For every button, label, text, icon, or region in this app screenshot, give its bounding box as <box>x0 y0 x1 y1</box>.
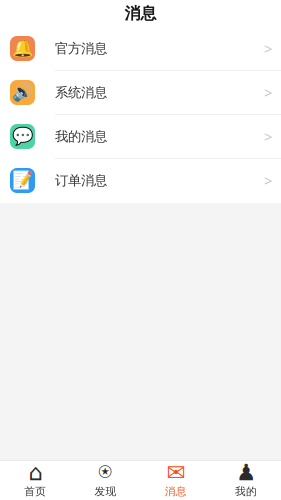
staticText: 我的消息 <box>55 128 107 145</box>
staticText: 系统消息 <box>55 84 107 101</box>
staticText: ♟ <box>236 460 256 485</box>
staticText: ⌂ <box>28 460 42 485</box>
staticText: 消息 <box>124 4 156 23</box>
staticText: ✉ <box>166 460 185 485</box>
staticText: 我的 <box>235 485 257 498</box>
staticText: 消息 <box>165 485 187 498</box>
button[interactable]: ⍟ <box>70 457 140 500</box>
button[interactable]: ♟ <box>211 457 281 500</box>
staticText: > <box>264 39 272 58</box>
staticText: > <box>264 83 272 102</box>
staticText: 发现 <box>94 485 116 498</box>
button[interactable]: ⌂ <box>0 457 70 500</box>
button[interactable]: ✉ <box>140 457 211 500</box>
staticText: ⍟ <box>98 461 112 483</box>
button[interactable]: 📝 <box>0 159 281 203</box>
button[interactable]: 🔊 <box>0 71 281 115</box>
staticText: 🔊 <box>11 83 33 102</box>
staticText: > <box>264 171 272 190</box>
staticText: 🔔 <box>11 39 33 58</box>
staticText: 首页 <box>24 485 46 498</box>
staticText: 📝 <box>11 171 33 190</box>
staticText: 官方消息 <box>55 40 107 57</box>
button[interactable]: 🔔 <box>0 27 281 71</box>
staticText: 订单消息 <box>55 172 107 189</box>
staticText: > <box>264 127 272 146</box>
staticText: 💬 <box>11 127 33 146</box>
button[interactable]: 💬 <box>0 115 281 159</box>
